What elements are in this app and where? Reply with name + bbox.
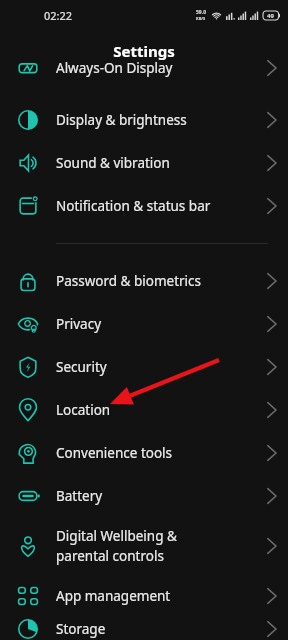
staticText: Digital Wellbeing & parental controls xyxy=(56,527,228,565)
staticText: Security xyxy=(56,358,228,376)
staticText: Storage xyxy=(56,620,228,638)
button[interactable]: Password & biometrics xyxy=(0,259,288,302)
staticText: Notification & status bar xyxy=(56,197,228,215)
staticText: Battery xyxy=(56,487,228,505)
button[interactable]: Display & brightness xyxy=(0,98,288,141)
button[interactable]: Privacy xyxy=(0,302,288,345)
staticText: Privacy xyxy=(56,315,228,333)
button[interactable]: Convenience tools xyxy=(0,431,288,474)
staticText: KB/S xyxy=(196,16,206,21)
staticText: App management xyxy=(56,587,228,605)
staticText: Location xyxy=(56,401,228,419)
staticText: Settings xyxy=(113,41,175,61)
button[interactable]: Battery xyxy=(0,474,288,517)
button[interactable]: Location xyxy=(0,388,288,431)
staticText: 02:22 xyxy=(44,8,73,23)
staticText: Convenience tools xyxy=(56,444,228,462)
staticText: 49 xyxy=(267,12,274,20)
button[interactable]: Sound & vibration xyxy=(0,141,288,184)
staticText: 59.0 xyxy=(196,9,206,16)
button[interactable]: Notification & status bar xyxy=(0,184,288,227)
button[interactable]: App management xyxy=(0,574,288,617)
staticText: Display & brightness xyxy=(56,111,228,129)
button[interactable]: Storage xyxy=(0,617,288,640)
staticText: Password & biometrics xyxy=(56,272,228,290)
staticText: Always-On Display xyxy=(56,59,228,77)
button[interactable]: Always-On Display xyxy=(0,72,288,98)
button[interactable]: Security xyxy=(0,345,288,388)
button[interactable]: Digital Wellbeing & parental controls xyxy=(0,517,288,574)
staticText: Sound & vibration xyxy=(56,154,228,172)
